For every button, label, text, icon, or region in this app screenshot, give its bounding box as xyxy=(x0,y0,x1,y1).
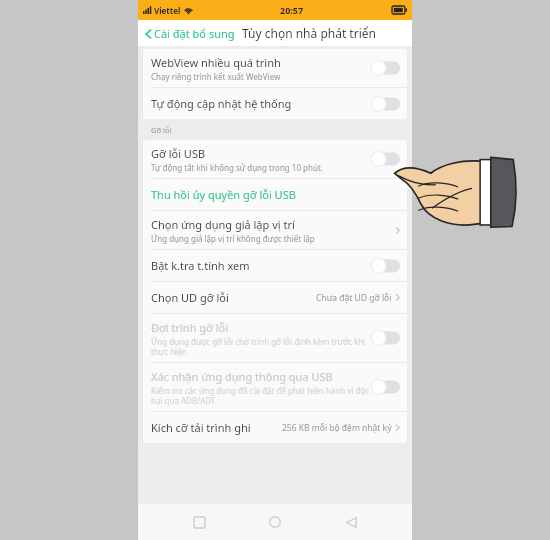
button[interactable]: Toggle off xyxy=(370,96,400,112)
button[interactable]: Toggle off xyxy=(370,379,400,395)
staticText: Tự động cập nhật hệ thống xyxy=(151,96,292,111)
button[interactable]: Xác nhận ứng dụng thông qua USB xyxy=(143,363,407,411)
staticText: Đợi trình gỡ lỗi xyxy=(151,320,229,335)
button[interactable]: Cài đặt bổ sung xyxy=(143,22,237,45)
button[interactable]: Recents xyxy=(184,507,214,537)
staticText: Chưa đặt UD gỡ lỗi xyxy=(316,292,392,304)
button[interactable]: WebView nhiều quá trình xyxy=(143,49,407,87)
staticText: Gỡ lỗi xyxy=(151,125,172,135)
button[interactable]: Kích cỡ tải trình ghi xyxy=(143,412,407,443)
staticText: Viettel xyxy=(154,5,181,16)
button[interactable]: Chọn ứng dụng giả lập vị trí xyxy=(143,211,407,249)
staticText: Ứng dụng giả lập vị trí không được thiết… xyxy=(151,233,315,244)
staticText: Chọn ứng dụng giả lập vị trí xyxy=(151,217,295,232)
staticText: Kiểm tra các ứng dụng đã cài đặt để phát… xyxy=(151,385,370,406)
button[interactable]: Tự động cập nhật hệ thống xyxy=(143,88,407,119)
button[interactable]: Toggle off xyxy=(370,258,400,274)
button[interactable]: Toggle off xyxy=(370,151,400,167)
button[interactable]: Thu hồi ủy quyền gỡ lỗi USB xyxy=(143,179,407,210)
staticText: Bật k.tra t.tính xem xyxy=(151,258,250,273)
staticText: Tự động tắt khi không sử dụng trong 10 p… xyxy=(151,162,323,173)
staticText: Cài đặt bổ sung xyxy=(154,26,235,41)
button[interactable]: Bật k.tra t.tính xem xyxy=(143,250,407,281)
button[interactable]: Toggle off xyxy=(370,330,400,346)
staticText: Kích cỡ tải trình ghi xyxy=(151,420,251,435)
staticText: Chạy riêng trình kết xuất WebView xyxy=(151,71,281,82)
button[interactable]: Home xyxy=(260,507,290,537)
staticText: Thu hồi ủy quyền gỡ lỗi USB xyxy=(151,187,296,202)
staticText: WebView nhiều quá trình xyxy=(151,55,281,70)
staticText: 20:57 xyxy=(280,4,304,16)
staticText: Tùy chọn nhà phát triển xyxy=(242,25,376,41)
other: Pointing hand xyxy=(392,152,517,228)
staticText: Xác nhận ứng dụng thông qua USB xyxy=(151,369,333,384)
staticText: 256 KB mỗi bộ đệm nhật ký xyxy=(282,422,392,434)
button[interactable]: Toggle off xyxy=(370,60,400,76)
button[interactable]: Đợi trình gỡ lỗi xyxy=(143,314,407,362)
staticText: Gỡ lỗi USB xyxy=(151,146,206,161)
staticText: Chọn UD gỡ lỗi xyxy=(151,290,229,305)
button[interactable]: Back xyxy=(336,507,366,537)
button[interactable]: Chọn UD gỡ lỗi xyxy=(143,282,407,313)
staticText: Ứng dụng được gỡ lỗi chờ trình gỡ lỗi đí… xyxy=(151,336,370,357)
button[interactable]: Gỡ lỗi USB xyxy=(143,140,407,178)
